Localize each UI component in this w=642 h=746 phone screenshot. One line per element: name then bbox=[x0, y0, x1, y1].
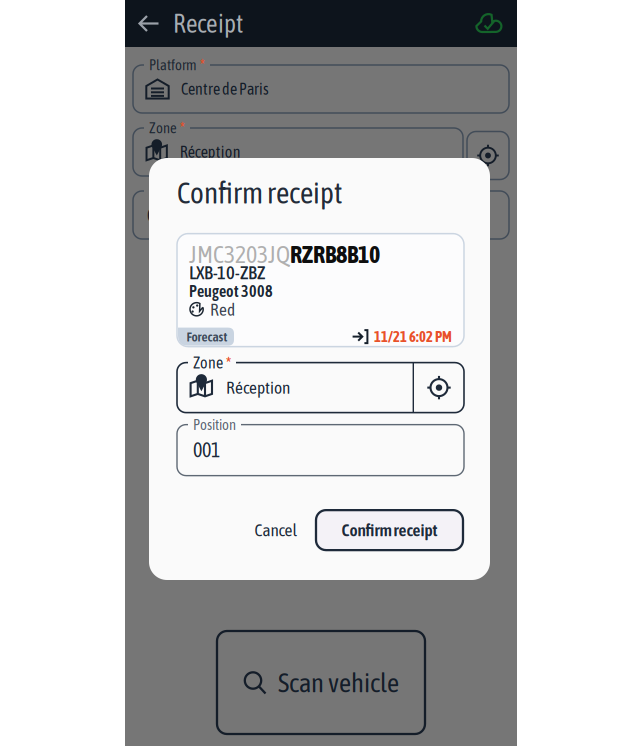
staticText: Position bbox=[149, 183, 192, 199]
button[interactable]: Scan vehicle bbox=[217, 631, 425, 734]
button[interactable]: Back bbox=[125, 0, 173, 47]
staticText: Zone bbox=[193, 353, 223, 372]
staticText: Platform bbox=[149, 57, 197, 73]
staticText: * bbox=[180, 119, 185, 137]
staticText: Centre de Paris bbox=[181, 80, 269, 98]
staticText: Réception bbox=[226, 378, 290, 398]
staticText: 001 bbox=[193, 439, 220, 462]
staticText: 11/21 6:02 PM bbox=[374, 328, 452, 345]
button[interactable]: Sync complete bbox=[461, 0, 517, 47]
staticText: Confirm receipt bbox=[177, 176, 342, 210]
staticText: Cancel bbox=[254, 520, 297, 540]
staticText: * bbox=[200, 56, 205, 74]
staticText: Scan vehicle bbox=[278, 667, 399, 698]
staticText: Confirm receipt bbox=[341, 520, 437, 540]
staticText: LXB-10-ZBZ bbox=[189, 262, 265, 283]
staticText: JMC3203JQ bbox=[189, 241, 290, 268]
staticText: 001 bbox=[147, 204, 174, 226]
staticText: Position bbox=[193, 416, 236, 433]
staticText: Red bbox=[210, 300, 235, 319]
staticText: Zone bbox=[149, 120, 177, 136]
staticText: Peugeot 3008 bbox=[189, 282, 273, 300]
staticText: RZRB8B10 bbox=[290, 241, 380, 268]
staticText: Receipt bbox=[173, 9, 243, 38]
staticText: Réception bbox=[180, 143, 241, 161]
staticText: * bbox=[226, 353, 231, 373]
button[interactable]: Confirm receipt bbox=[316, 510, 463, 550]
button[interactable]: Cancel bbox=[236, 510, 316, 551]
staticText: Forecast bbox=[186, 329, 227, 344]
